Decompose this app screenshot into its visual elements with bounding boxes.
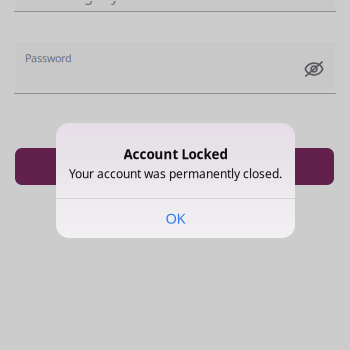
- button[interactable]: OK: [56, 198, 295, 238]
- button[interactable]: Log In: [15, 148, 334, 185]
- staticText: Log In: [152, 157, 196, 176]
- staticText: Password: [25, 51, 72, 65]
- staticText: Your account was permanently closed.: [69, 165, 282, 181]
- staticText: Forgot your: [61, 0, 142, 5]
- staticText: OK: [165, 208, 185, 228]
- button[interactable]: Show password: [294, 52, 334, 86]
- staticText: Account Locked: [123, 145, 227, 163]
